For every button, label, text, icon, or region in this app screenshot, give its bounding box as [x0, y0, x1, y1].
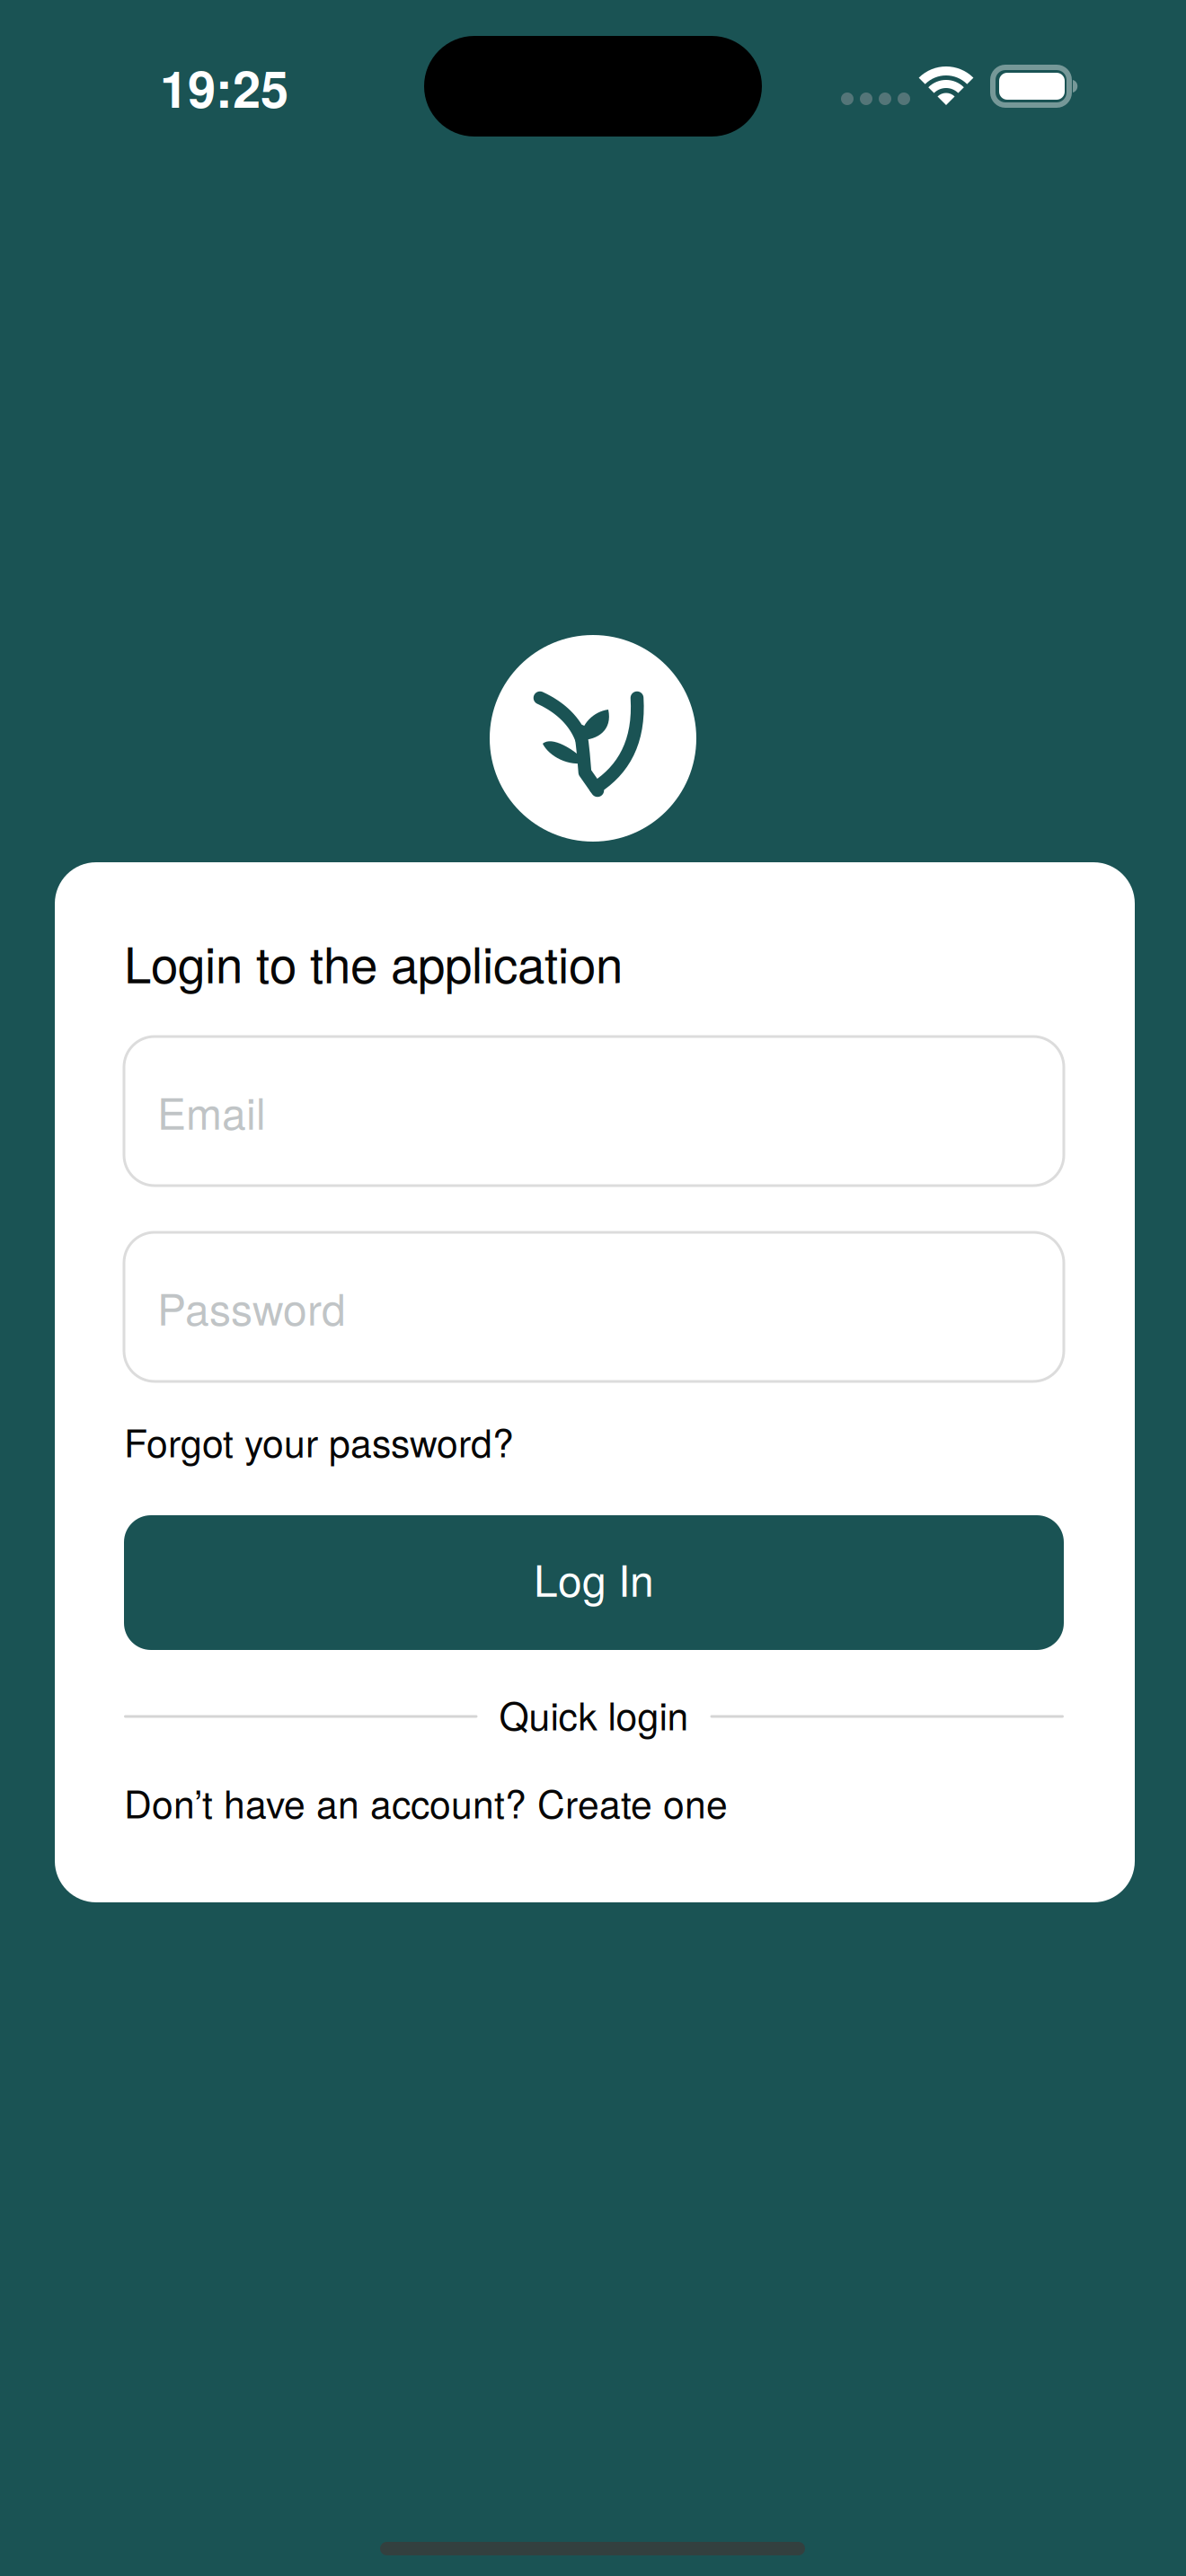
staticText: Login to the application — [124, 927, 623, 997]
staticText: Quick login — [499, 1686, 689, 1741]
staticText: Forgot your password? — [124, 1413, 514, 1468]
button[interactable]: Email — [124, 1037, 1064, 1186]
staticText: Password — [157, 1276, 346, 1338]
staticText: 19:25 — [160, 51, 288, 123]
staticText: Don’t have an account? Create one — [124, 1774, 728, 1829]
button[interactable]: Password — [124, 1232, 1064, 1381]
button[interactable]: Log In — [124, 1515, 1064, 1650]
staticText: Log In — [534, 1547, 654, 1609]
button[interactable]: Forgot your password? — [124, 1421, 514, 1460]
button[interactable]: Don’t have an account? Create one — [124, 1782, 728, 1822]
staticText: Email — [157, 1080, 266, 1142]
